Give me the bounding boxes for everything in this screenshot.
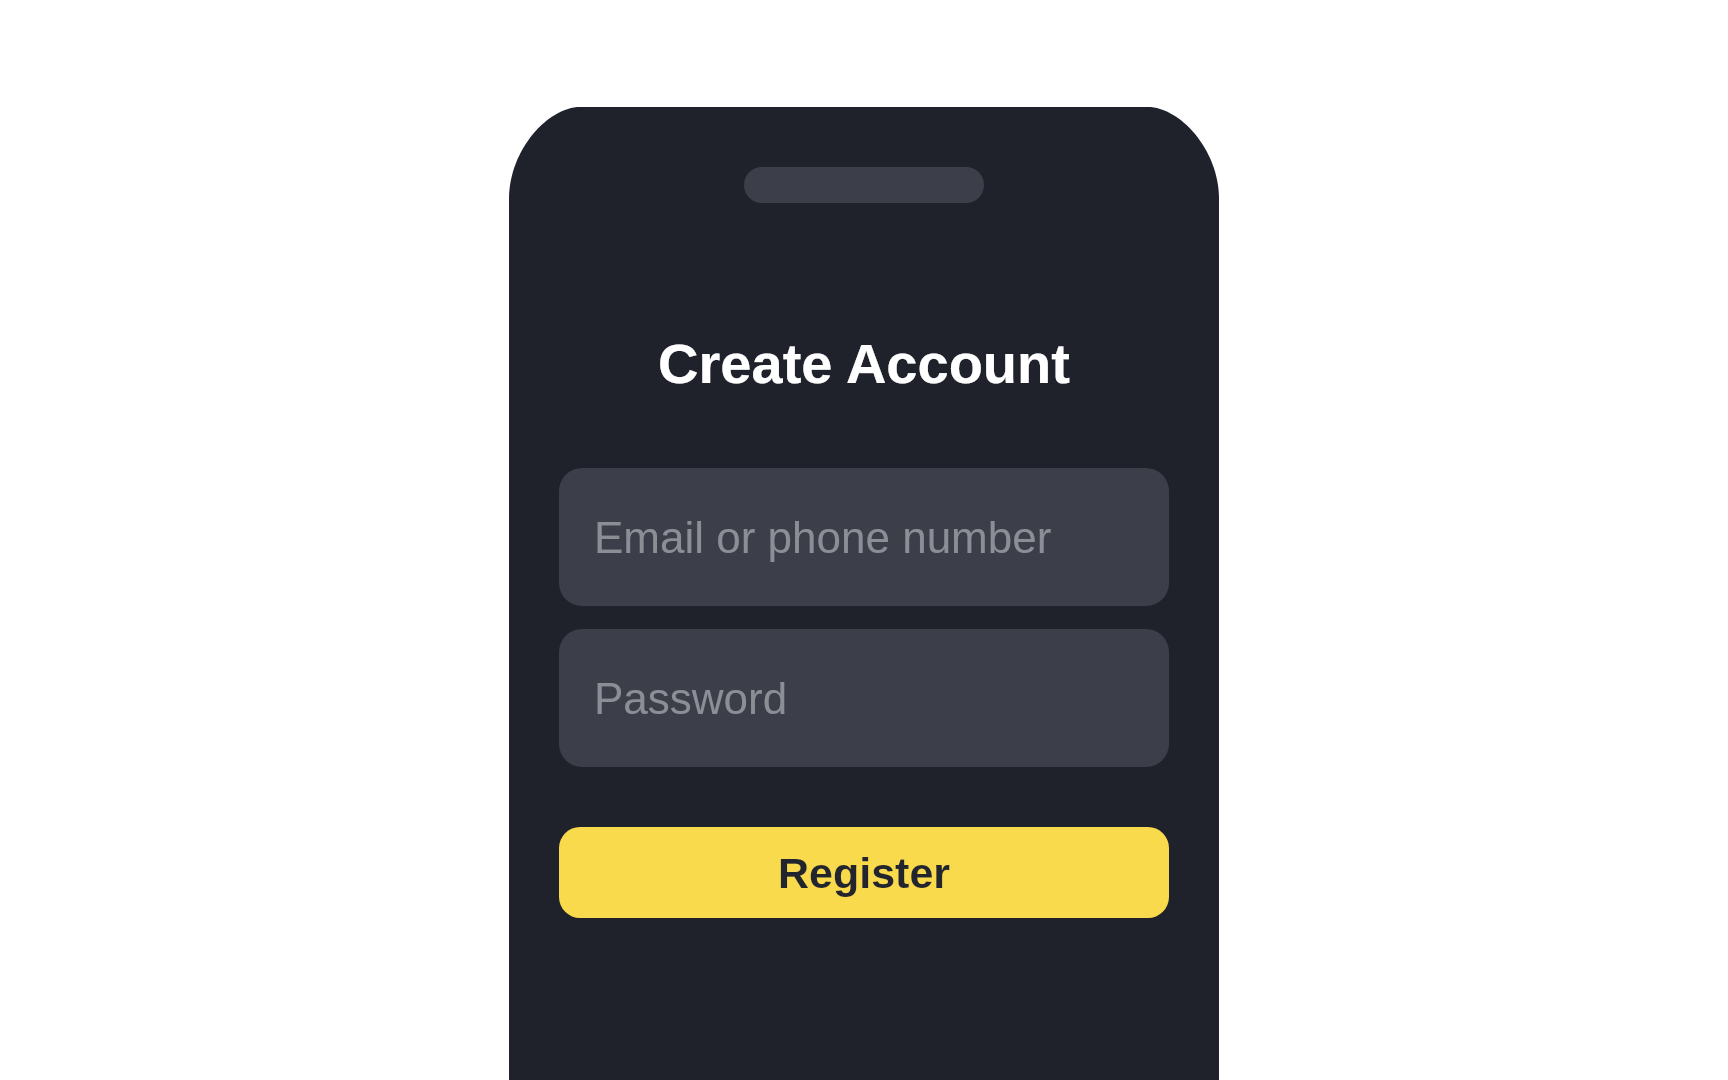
staticText: Register	[778, 849, 951, 897]
button[interactable]: Password	[559, 629, 1169, 767]
staticText: Email or phone number	[594, 513, 1052, 562]
staticText: Password	[594, 674, 788, 723]
staticText: Create Account	[658, 332, 1070, 395]
button[interactable]: Register	[559, 827, 1169, 918]
button[interactable]: Email or phone number	[559, 468, 1169, 606]
